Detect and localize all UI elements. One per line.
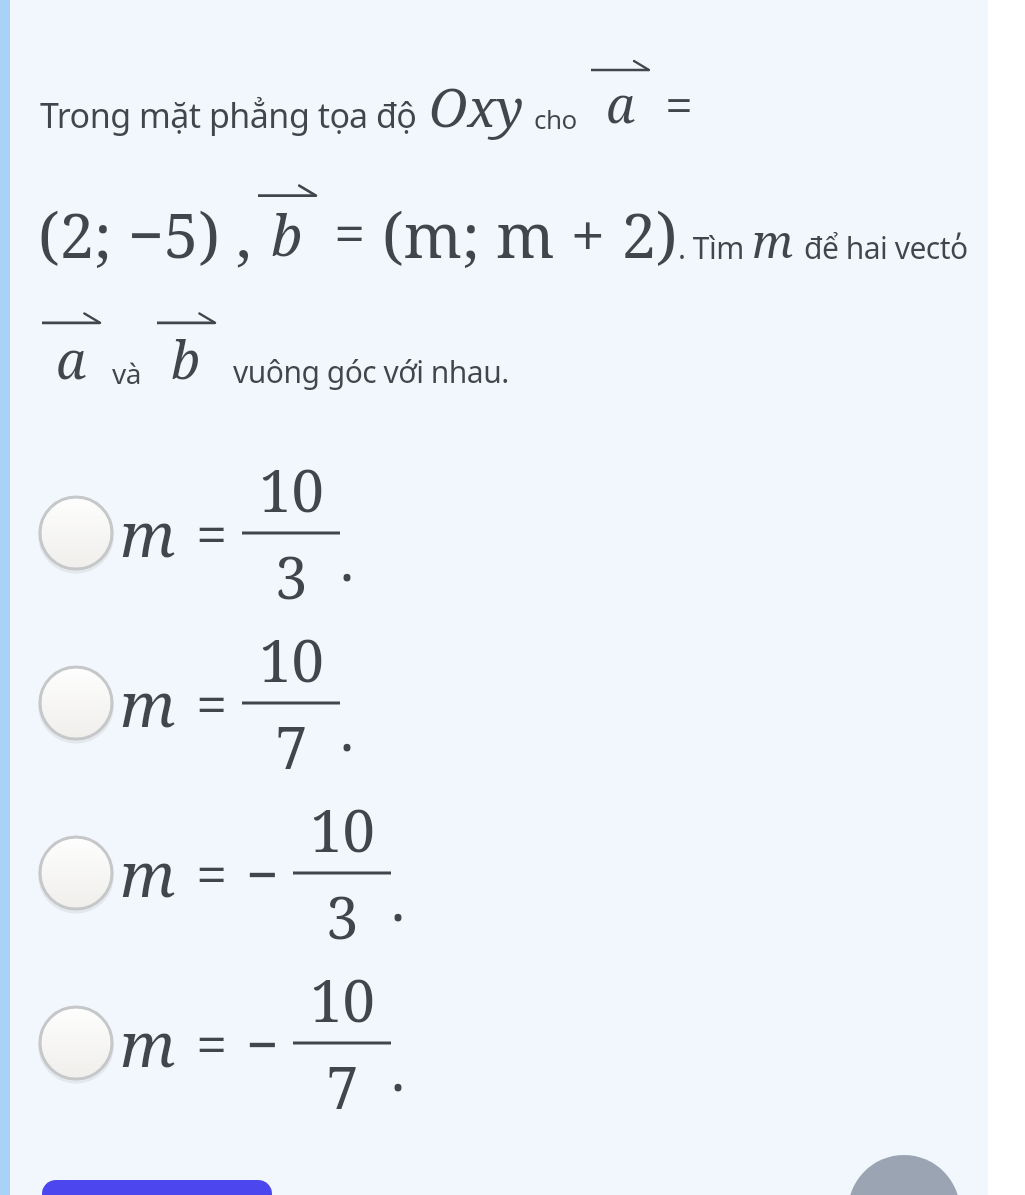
- staticText: m: [120, 491, 176, 575]
- staticText: (2; −5) ,: [38, 192, 252, 276]
- staticText: 3: [326, 877, 359, 956]
- staticText: .: [340, 691, 354, 767]
- staticText: 7: [275, 707, 308, 786]
- staticText: và: [112, 354, 141, 392]
- staticText: −: [246, 1005, 279, 1081]
- button[interactable]: m: [0, 788, 1025, 958]
- staticText: −: [246, 835, 279, 911]
- staticText: 3: [275, 537, 308, 616]
- staticText: Trong mặt phẳng tọa độ: [40, 92, 417, 138]
- button[interactable]: Help: [848, 1155, 960, 1195]
- staticText: =: [665, 70, 693, 138]
- staticText: .: [391, 861, 405, 937]
- staticText: a: [606, 70, 635, 138]
- staticText: .: [391, 1031, 405, 1107]
- staticText: =: [196, 665, 228, 741]
- staticText: để hai vecto̓: [804, 227, 968, 268]
- staticText: .: [340, 521, 354, 597]
- staticText: =: [196, 1005, 228, 1081]
- staticText: 10: [259, 450, 324, 529]
- staticText: 7: [326, 1047, 359, 1126]
- staticText: m: [120, 661, 176, 745]
- staticText: a: [56, 323, 87, 394]
- staticText: 10: [259, 620, 324, 699]
- staticText: vuông góc với nhau.: [233, 351, 509, 392]
- button[interactable]: Submit answer: [42, 1180, 272, 1195]
- staticText: cho: [534, 101, 577, 136]
- staticText: . Tìm: [678, 227, 744, 268]
- staticText: 10: [310, 960, 375, 1039]
- button[interactable]: m: [0, 958, 1025, 1128]
- staticText: =: [196, 495, 228, 571]
- staticText: m: [120, 1001, 176, 1085]
- button[interactable]: m: [0, 448, 1025, 618]
- staticText: Oxy: [429, 71, 524, 142]
- staticText: b: [171, 323, 201, 394]
- staticText: m: [120, 831, 176, 915]
- button[interactable]: m: [0, 618, 1025, 788]
- staticText: m: [752, 209, 794, 272]
- staticText: =: [334, 194, 366, 270]
- staticText: 10: [310, 790, 375, 869]
- staticText: b: [271, 196, 303, 272]
- staticText: =: [196, 835, 228, 911]
- staticText: (m; m + 2): [382, 192, 678, 276]
